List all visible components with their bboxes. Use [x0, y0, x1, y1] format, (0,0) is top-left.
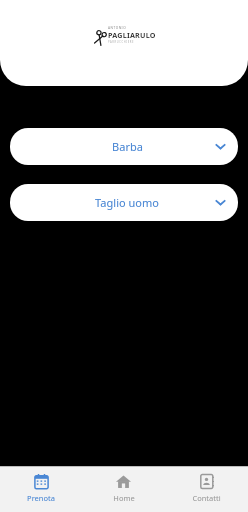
staticText: Taglio uomo	[95, 195, 159, 210]
staticText: ANTONIO	[108, 26, 127, 30]
staticText: Home	[113, 493, 135, 503]
button[interactable]: Taglio uomo	[10, 184, 238, 221]
other: Prenota	[34, 474, 49, 489]
staticText: PAGLIARULO	[108, 30, 156, 40]
button[interactable]: Prenota	[0, 467, 82, 512]
button[interactable]: Barba	[10, 128, 238, 165]
other: Home	[116, 474, 131, 489]
staticText: PARRUCCHIERE	[108, 40, 134, 44]
staticText: Contatti	[192, 493, 221, 503]
button[interactable]: Home	[82, 467, 165, 512]
staticText: Barba	[112, 139, 143, 154]
staticText: Prenota	[27, 493, 55, 503]
button[interactable]: Contatti	[165, 467, 248, 512]
other: Contatti	[199, 474, 214, 489]
